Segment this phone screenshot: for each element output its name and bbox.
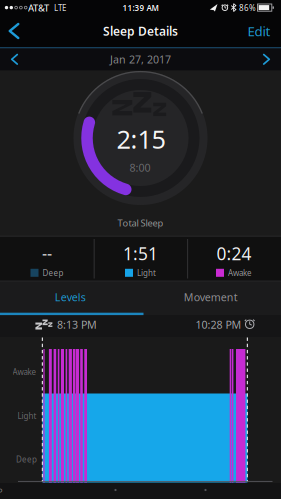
staticText: Awake <box>12 367 36 377</box>
staticText: Awake <box>228 267 252 278</box>
staticText: -- <box>42 242 52 264</box>
button[interactable]: Previous day <box>2 48 26 70</box>
staticText: AT&T <box>28 2 49 14</box>
button[interactable]: Movement <box>141 281 281 312</box>
staticText: Deep <box>16 454 37 465</box>
staticText: Deep <box>42 267 63 278</box>
staticText: 10:28 PM <box>195 317 241 332</box>
staticText: 8:13 PM <box>57 317 97 332</box>
staticText: Edit <box>247 22 270 40</box>
staticText: Sleep Details <box>103 23 178 39</box>
staticText: 8:00 <box>129 160 150 175</box>
button[interactable]: Levels <box>0 281 140 312</box>
button[interactable]: Back <box>1 16 27 46</box>
staticText: 86% <box>239 2 256 13</box>
staticText: 2:15 <box>116 122 165 156</box>
button[interactable]: Edit <box>237 16 281 46</box>
staticText: Total Sleep <box>117 217 163 229</box>
staticText: Jan 27, 2017 <box>110 52 171 66</box>
staticText: 0:24 <box>216 242 251 265</box>
staticText: LTE <box>54 2 66 13</box>
staticText: Light <box>17 411 36 421</box>
staticText: Levels <box>55 290 86 304</box>
staticText: 11:39 AM <box>122 2 158 13</box>
staticText: 1:51 <box>123 242 158 265</box>
staticText: Movement <box>184 290 238 304</box>
staticText: 5 <box>0 484 3 495</box>
button[interactable]: Next day <box>254 48 278 70</box>
staticText: Light <box>137 267 156 278</box>
